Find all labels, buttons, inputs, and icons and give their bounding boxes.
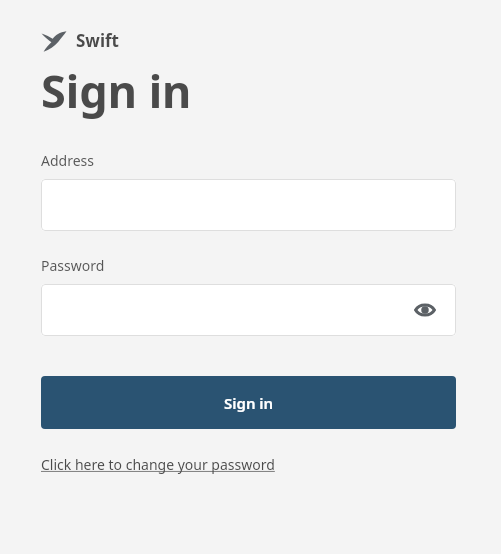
staticText: Sign in [41, 60, 192, 121]
staticText: Sign in [224, 393, 274, 413]
staticText: Swift [76, 29, 119, 52]
button[interactable]: Sign in [41, 376, 456, 429]
button[interactable]: Show password [41, 284, 456, 336]
staticText: Password [41, 256, 105, 275]
staticText: Click here to change your password [41, 455, 275, 474]
button[interactable]: Show password [414, 299, 436, 321]
button[interactable] [41, 179, 456, 231]
button[interactable]: Click here to change your password [41, 455, 275, 474]
staticText: Address [41, 151, 94, 170]
